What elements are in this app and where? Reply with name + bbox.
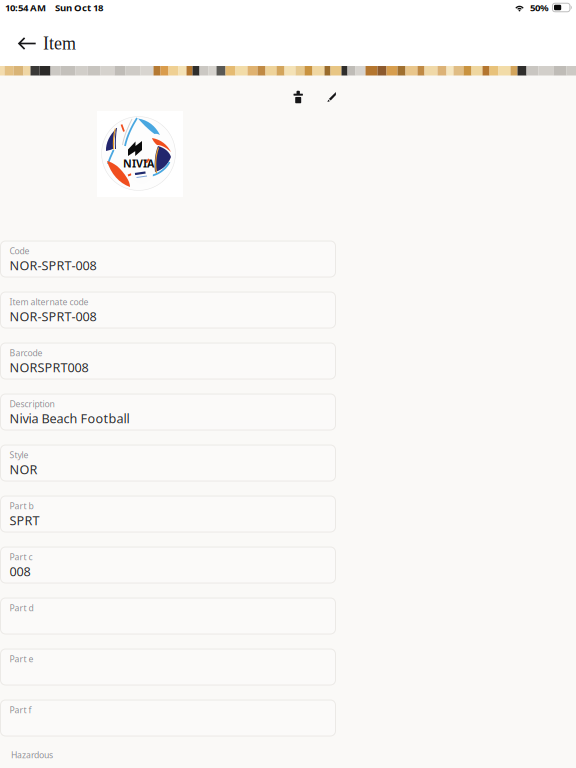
- staticText: Part c: [9, 551, 32, 563]
- staticText: Style: [9, 449, 28, 461]
- staticText: Item alternate code: [9, 296, 88, 308]
- button[interactable]: Delete: [286, 76, 310, 110]
- staticText: Code: [9, 245, 29, 257]
- button[interactable]: Back: [0, 21, 43, 66]
- staticText: Part d: [9, 602, 33, 614]
- staticText: Nivia Beach Football: [9, 410, 129, 427]
- staticText: Hazardous: [11, 749, 53, 761]
- staticText: 10:54 AM: [5, 1, 46, 14]
- staticText: NOR-SPRT-008: [9, 257, 96, 274]
- staticText: Part e: [9, 653, 33, 665]
- staticText: Part b: [9, 500, 33, 512]
- staticText: 008: [9, 563, 30, 580]
- staticText: NOR-SPRT-008: [9, 308, 96, 325]
- staticText: Sun Oct 18: [55, 1, 103, 14]
- staticText: SPRT: [9, 512, 39, 529]
- staticText: Part f: [9, 704, 31, 716]
- staticText: 50%: [530, 1, 549, 14]
- staticText: NORSPRT008: [9, 359, 88, 376]
- staticText: Item: [43, 33, 76, 53]
- staticText: NIVIA: [123, 156, 154, 170]
- staticText: Barcode: [9, 347, 42, 359]
- button[interactable]: Edit: [320, 75, 343, 111]
- staticText: NOR: [9, 461, 37, 478]
- staticText: Description: [9, 398, 54, 410]
